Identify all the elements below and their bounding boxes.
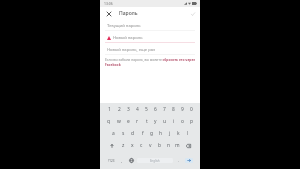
button[interactable]: English [137, 158, 173, 163]
button[interactable]: b [155, 139, 164, 152]
button[interactable]: Ввод [185, 158, 193, 163]
staticText: Если вы забыли пароль, вы можете сбросит… [105, 57, 197, 67]
button[interactable]: 6 [151, 103, 160, 115]
button[interactable]: d [128, 128, 138, 139]
button[interactable]: p [187, 115, 196, 128]
staticText: 8 [172, 106, 175, 113]
staticText: y [154, 118, 157, 125]
staticText: ?123 [108, 159, 115, 163]
staticText: h [159, 130, 163, 137]
staticText: English [150, 159, 160, 163]
staticText: l [187, 130, 189, 137]
button[interactable]: 7 [160, 103, 169, 115]
staticText: v [149, 142, 152, 149]
button[interactable]: e [124, 115, 133, 128]
button[interactable]: Новый пароль, еще раз [100, 43, 200, 55]
button[interactable]: u [160, 115, 169, 128]
staticText: Текущий пароль [107, 23, 141, 28]
button[interactable]: m [173, 139, 182, 152]
staticText: f [142, 130, 144, 137]
button[interactable]: r [133, 115, 142, 128]
button[interactable]: h [156, 128, 165, 139]
staticText: z [122, 142, 125, 149]
button[interactable]: i [169, 115, 178, 128]
staticText: 9 [181, 106, 184, 113]
staticText: c [140, 142, 143, 149]
staticText: 5 [145, 106, 148, 113]
staticText: p [190, 118, 194, 125]
staticText: d [131, 130, 135, 137]
staticText: n [167, 142, 171, 149]
staticText: u [163, 118, 167, 125]
button[interactable]: ?123 [105, 152, 117, 169]
staticText: 13:06 [104, 1, 113, 6]
button[interactable]: w [114, 115, 124, 128]
button[interactable]: a [108, 128, 118, 139]
staticText: , [121, 158, 123, 164]
button[interactable]: j [165, 128, 174, 139]
staticText: 3 [127, 106, 130, 113]
button[interactable]: v [146, 139, 155, 152]
staticText: g [150, 130, 154, 137]
staticText: Пароль [119, 10, 138, 17]
staticText: m [175, 142, 180, 149]
button[interactable]: 0 [187, 103, 196, 115]
button[interactable]: o [178, 115, 187, 128]
button[interactable]: 9 [178, 103, 187, 115]
staticText: q [107, 118, 111, 125]
staticText: t [146, 118, 148, 125]
staticText: Новый пароль, еще раз [107, 47, 156, 52]
staticText: 2 [118, 106, 121, 113]
button[interactable] [126, 152, 136, 169]
staticText: e [127, 118, 130, 125]
button[interactable]: f [138, 128, 147, 139]
staticText: 1 [108, 106, 111, 113]
button[interactable] [105, 139, 119, 152]
button[interactable]: 1 [104, 103, 114, 115]
button[interactable]: y [151, 115, 160, 128]
staticText: s [122, 130, 125, 137]
button[interactable]: t [142, 115, 151, 128]
staticText: r [136, 118, 139, 125]
button[interactable]: z [119, 139, 128, 152]
staticText: 4 [136, 106, 139, 113]
button[interactable]: n [164, 139, 173, 152]
button[interactable]: 4 [133, 103, 142, 115]
button[interactable]: g [147, 128, 156, 139]
staticText: k [177, 130, 180, 137]
staticText: x [131, 142, 134, 149]
button[interactable]: Сохранить [188, 9, 197, 18]
button[interactable]: s [118, 128, 128, 139]
button[interactable]: q [104, 115, 114, 128]
staticText: j [169, 130, 171, 137]
staticText: . [178, 158, 180, 164]
button[interactable] [182, 139, 195, 152]
staticText: 0 [190, 106, 193, 113]
staticText: a [112, 130, 115, 137]
staticText: 7 [163, 106, 166, 113]
button[interactable]: Закрыть [104, 9, 113, 18]
button[interactable]: 2 [114, 103, 124, 115]
button[interactable]: Текущий пароль [100, 19, 200, 31]
staticText: Новый пароль [113, 35, 143, 40]
button[interactable]: 3 [124, 103, 133, 115]
button[interactable]: 5 [142, 103, 151, 115]
button[interactable]: 8 [169, 103, 178, 115]
button[interactable]: k [174, 128, 183, 139]
staticText: o [181, 118, 184, 125]
staticText: i [173, 118, 175, 125]
button[interactable]: x [128, 139, 137, 152]
staticText: b [158, 142, 162, 149]
staticText: w [117, 118, 121, 125]
button[interactable]: c [137, 139, 146, 152]
staticText: 6 [154, 106, 157, 113]
button[interactable]: l [183, 128, 192, 139]
button[interactable]: Новый пароль [100, 31, 200, 43]
button[interactable]: , [117, 152, 126, 169]
